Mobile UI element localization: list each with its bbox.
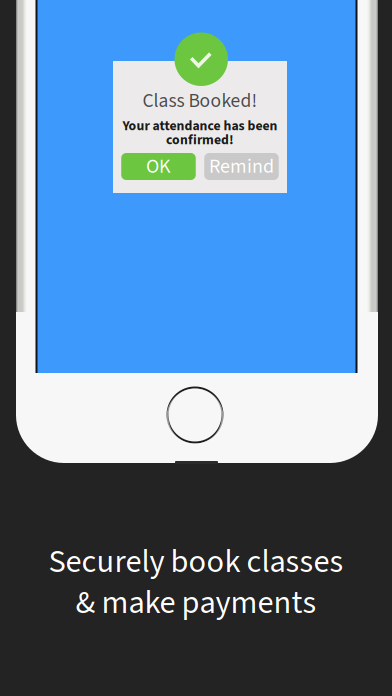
- button[interactable]: OK: [121, 153, 196, 180]
- button[interactable]: Remind: [204, 153, 279, 180]
- staticText: OK: [146, 152, 171, 181]
- staticText: & make payments: [75, 580, 316, 626]
- staticText: confirmed!: [166, 130, 234, 150]
- staticText: Securely book classes: [48, 539, 343, 585]
- staticText: Remind: [209, 152, 274, 181]
- staticText: Your attendance has been: [122, 116, 277, 136]
- staticText: Class Booked!: [142, 87, 257, 115]
